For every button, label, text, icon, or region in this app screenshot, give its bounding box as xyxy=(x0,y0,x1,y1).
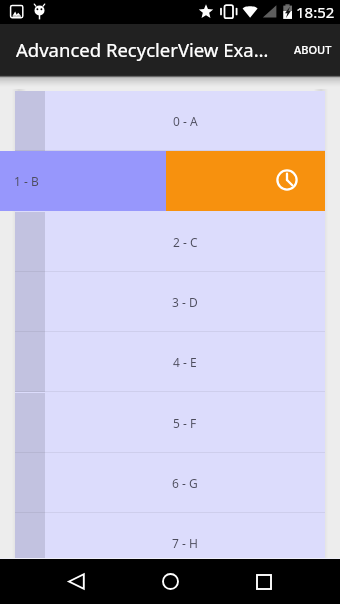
button[interactable]: Set reminder xyxy=(15,151,325,211)
staticText: 7 - H xyxy=(172,535,198,551)
button[interactable]: 0 - A xyxy=(15,91,325,151)
staticText: 5 - F xyxy=(173,415,197,431)
button[interactable]: 6 - G xyxy=(15,453,325,513)
staticText: 18:52 xyxy=(296,2,335,22)
button[interactable]: Home xyxy=(142,559,198,604)
button[interactable]: 1 - B xyxy=(0,151,166,211)
staticText: 3 - D xyxy=(172,294,198,310)
staticText: 4 - E xyxy=(173,354,197,370)
button[interactable]: ABOUT xyxy=(286,24,340,75)
staticText: 6 - G xyxy=(172,475,198,491)
staticText: 2 - C xyxy=(173,234,198,250)
button[interactable]: 4 - E xyxy=(15,332,325,392)
staticText: Advanced RecyclerView Exa… xyxy=(16,37,269,62)
button[interactable]: 5 - F xyxy=(15,393,325,453)
staticText: 1 - B xyxy=(14,173,39,189)
button[interactable]: Back xyxy=(48,559,104,604)
staticText: ABOUT xyxy=(294,42,332,57)
button[interactable]: Recent apps xyxy=(236,559,292,604)
staticText: 0 - A xyxy=(173,113,198,129)
button[interactable]: 2 - C xyxy=(15,212,325,272)
button[interactable]: 3 - D xyxy=(15,272,325,332)
button[interactable]: 7 - H xyxy=(15,513,325,559)
